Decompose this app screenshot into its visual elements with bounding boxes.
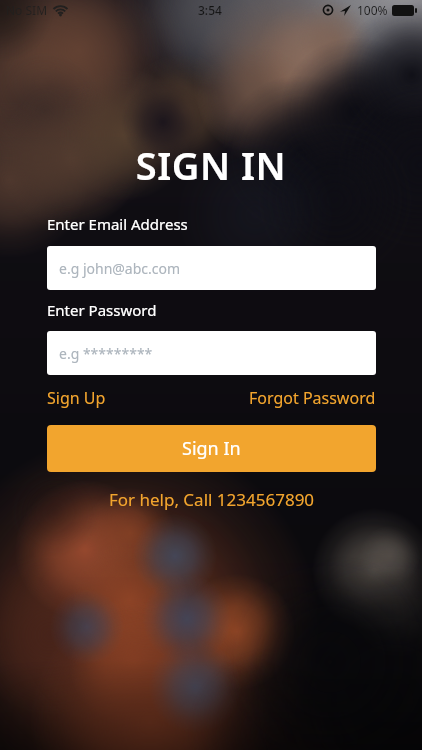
button[interactable]: Forgot Password <box>249 387 376 409</box>
button[interactable]: Sign In <box>47 425 376 472</box>
staticText: Sign In <box>182 436 241 461</box>
staticText: Enter Password <box>47 300 157 320</box>
button[interactable]: Sign Up <box>47 387 106 409</box>
button[interactable]: e.g john@abc.com <box>47 246 376 290</box>
staticText: e.g john@abc.com <box>59 259 181 278</box>
staticText: e.g ********* <box>59 344 153 363</box>
staticText: SIGN IN <box>0 139 422 191</box>
staticText: Enter Email Address <box>47 214 188 234</box>
button[interactable]: For help, Call 1234567890 <box>47 488 376 511</box>
staticText: No SIM <box>6 2 48 18</box>
staticText: 3:54 <box>198 2 225 18</box>
button[interactable]: e.g ********* <box>47 331 376 375</box>
staticText: 100% <box>357 2 388 18</box>
